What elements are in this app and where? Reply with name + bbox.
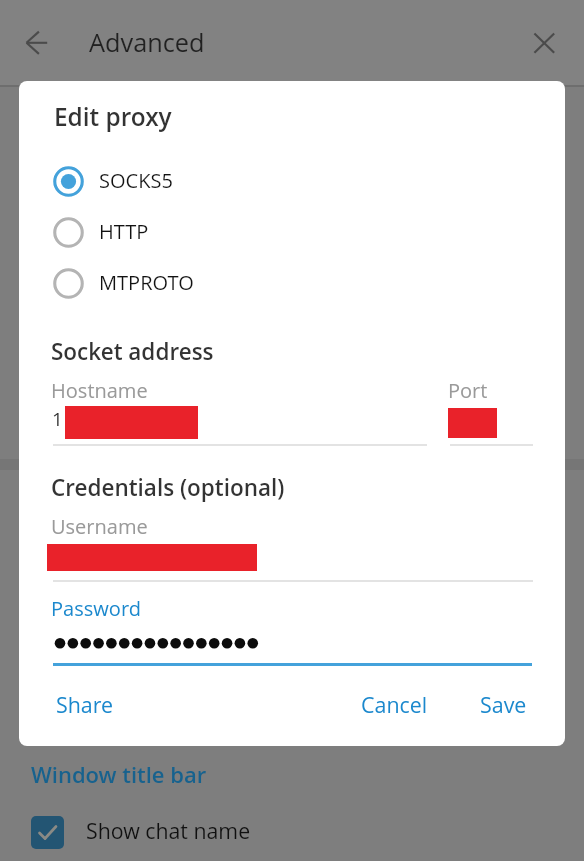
staticText: 1 bbox=[52, 406, 63, 432]
button[interactable]: Cancel bbox=[347, 679, 442, 732]
staticText: SOCKS5 bbox=[99, 167, 173, 194]
button[interactable]: Back bbox=[14, 20, 60, 66]
staticText: Window title bar bbox=[31, 759, 207, 789]
button[interactable]: HTTP bbox=[19, 207, 565, 257]
staticText: HTTP bbox=[99, 218, 149, 245]
button[interactable]: Save bbox=[466, 679, 542, 732]
staticText: Socket address bbox=[51, 336, 214, 367]
staticText: Hostname bbox=[51, 377, 148, 404]
button[interactable]: Close bbox=[521, 20, 567, 66]
button[interactable]: SOCKS5 bbox=[19, 156, 565, 206]
button[interactable]: Show chat name bbox=[0, 800, 584, 861]
staticText: Save bbox=[480, 690, 527, 719]
button[interactable]: Share bbox=[42, 679, 126, 732]
staticText: Show chat name bbox=[86, 816, 251, 845]
staticText: MTPROTO bbox=[99, 269, 194, 296]
staticText: Edit proxy bbox=[54, 100, 172, 133]
staticText: Advanced bbox=[89, 25, 205, 59]
button[interactable]: MTPROTO bbox=[19, 258, 565, 308]
staticText: Password bbox=[51, 595, 141, 622]
staticText: Cancel bbox=[361, 690, 428, 719]
staticText: Share bbox=[56, 690, 114, 719]
staticText: Port bbox=[448, 377, 488, 404]
staticText: Credentials (optional) bbox=[51, 472, 285, 503]
staticText: Username bbox=[51, 513, 148, 540]
